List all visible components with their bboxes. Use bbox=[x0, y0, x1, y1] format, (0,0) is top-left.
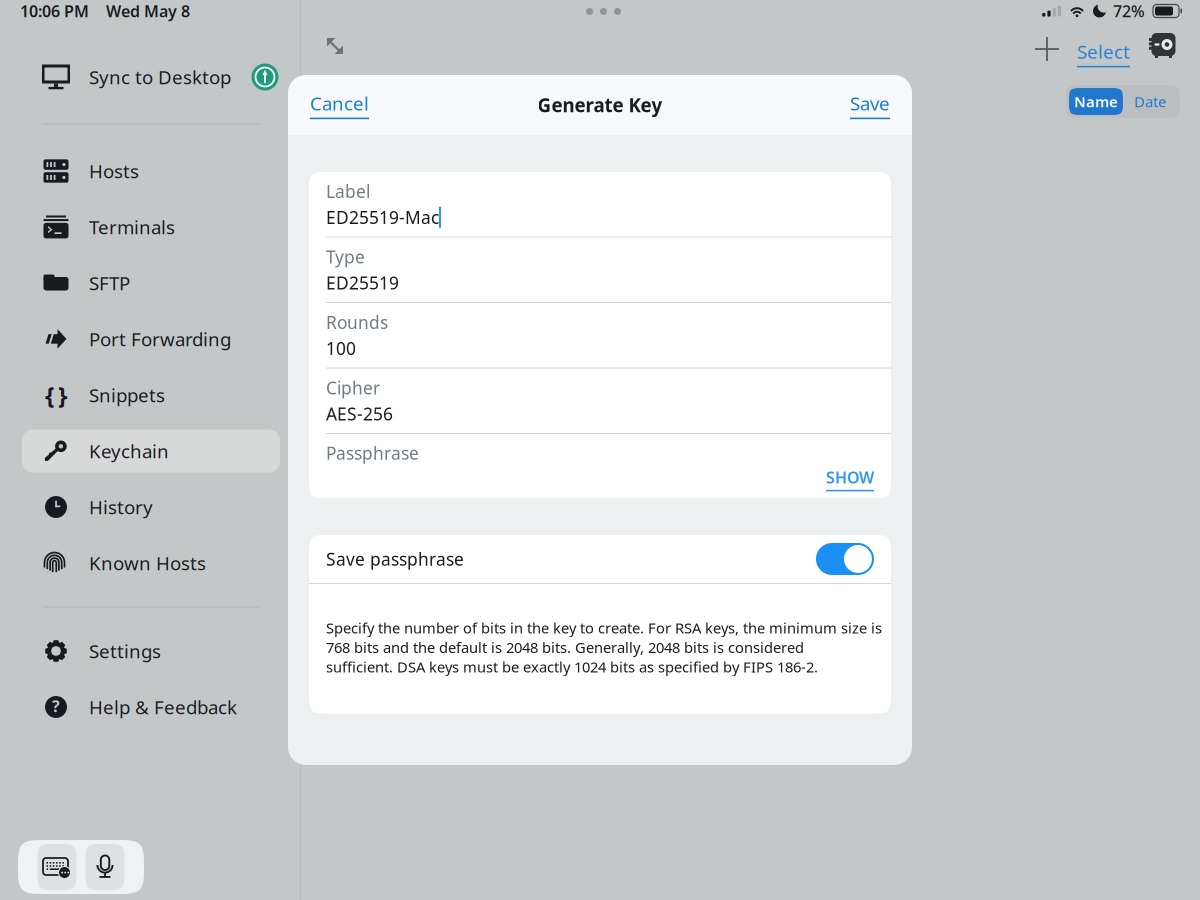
staticText: Snippets bbox=[89, 383, 165, 407]
button[interactable]: Keychain options bbox=[1149, 32, 1178, 60]
button[interactable]: Keyboard bbox=[37, 844, 76, 890]
staticText: ? bbox=[52, 695, 60, 717]
button[interactable]: Save passphrase bbox=[816, 543, 874, 575]
button[interactable]: Keychain bbox=[0, 423, 300, 479]
staticText: Cipher bbox=[326, 376, 380, 399]
button[interactable]: Cancel bbox=[310, 83, 379, 127]
button[interactable]: Terminals bbox=[0, 199, 300, 255]
staticText: Keychain bbox=[89, 439, 169, 463]
staticText: SHOW bbox=[826, 467, 874, 488]
staticText: Specify the number of bits in the key to… bbox=[326, 618, 882, 637]
button[interactable]: Known Hosts bbox=[0, 535, 300, 591]
button[interactable]: ? bbox=[0, 679, 300, 735]
staticText: Select bbox=[1077, 39, 1130, 64]
button[interactable]: Settings bbox=[0, 623, 300, 679]
button[interactable]: Date bbox=[1123, 88, 1177, 115]
staticText: Name bbox=[1074, 92, 1118, 111]
staticText: Help & Feedback bbox=[89, 695, 237, 719]
staticText: 10:06 PM bbox=[20, 0, 89, 22]
staticText: Date bbox=[1134, 92, 1166, 111]
button[interactable]: Select bbox=[1071, 33, 1136, 73]
staticText: 100 bbox=[326, 337, 356, 360]
button[interactable]: { bbox=[0, 367, 300, 423]
staticText: Save bbox=[850, 91, 890, 116]
staticText: Cancel bbox=[310, 91, 369, 116]
staticText: ED25519 bbox=[326, 271, 399, 294]
button[interactable]: Name bbox=[1069, 88, 1123, 115]
staticText: Rounds bbox=[326, 311, 388, 334]
staticText: Known Hosts bbox=[89, 551, 206, 575]
staticText: Type bbox=[326, 245, 365, 268]
staticText: Sync to Desktop bbox=[89, 65, 231, 89]
staticText: { bbox=[45, 379, 54, 411]
staticText: AES-256 bbox=[326, 402, 393, 425]
staticText: 768 bits and the default is 2048 bits. G… bbox=[326, 637, 804, 657]
staticText: Port Forwarding bbox=[89, 327, 231, 351]
staticText: SFTP bbox=[89, 271, 130, 295]
staticText: Terminals bbox=[89, 215, 175, 239]
button[interactable]: Add key bbox=[1028, 30, 1066, 68]
staticText: 72% bbox=[1113, 0, 1145, 22]
button[interactable]: Hosts bbox=[0, 143, 300, 199]
staticText: } bbox=[58, 379, 67, 411]
button[interactable]: Dictation bbox=[85, 844, 124, 890]
staticText: Save passphrase bbox=[326, 547, 464, 570]
button[interactable]: History bbox=[0, 479, 300, 535]
staticText: ED25519-Mac bbox=[326, 206, 439, 229]
button[interactable]: Sync to Desktop bbox=[248, 60, 282, 94]
staticText: Passphrase bbox=[326, 441, 419, 464]
button[interactable]: SFTP bbox=[0, 255, 300, 311]
button[interactable]: Save bbox=[840, 83, 890, 127]
staticText: Generate Key bbox=[537, 93, 662, 117]
staticText: Settings bbox=[89, 639, 161, 663]
staticText: Label bbox=[326, 180, 370, 203]
staticText: Hosts bbox=[89, 159, 139, 183]
button[interactable]: SHOW bbox=[826, 467, 874, 491]
button[interactable]: Sync to Desktop bbox=[0, 49, 300, 105]
staticText: sufficient. DSA keys must be exactly 102… bbox=[326, 657, 818, 676]
staticText: History bbox=[89, 495, 153, 519]
button[interactable]: Port Forwarding bbox=[0, 311, 300, 367]
staticText: Wed May 8 bbox=[106, 0, 190, 22]
